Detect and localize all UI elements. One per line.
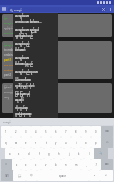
button[interactable]: f bbox=[34, 148, 44, 159]
staticText: z bbox=[16, 163, 18, 167]
staticText: ပေးသည် bbox=[4, 90, 14, 94]
staticText: e bbox=[25, 141, 27, 145]
staticText: f bbox=[39, 152, 40, 156]
button[interactable]: d bbox=[24, 148, 34, 159]
button[interactable]: .? bbox=[91, 159, 101, 170]
button[interactable]: • bbox=[89, 170, 100, 181]
button[interactable]: ↵ bbox=[100, 170, 113, 181]
button[interactable]: 0 bbox=[91, 126, 101, 137]
button[interactable]: မိမိဘဝ၏အစ bbox=[13, 77, 58, 91]
button[interactable]: 7 bbox=[61, 126, 71, 137]
button[interactable]: ပေးချင်သော bbox=[13, 55, 58, 69]
button[interactable]: ⌫ bbox=[101, 126, 113, 137]
button[interactable]: k bbox=[74, 148, 84, 159]
staticText: လှူဒါန်းမှုနှင့် ထိုက် bbox=[15, 84, 35, 90]
button[interactable]: Clear bbox=[101, 7, 106, 12]
button[interactable]: z bbox=[12, 159, 21, 170]
button[interactable]: , bbox=[81, 159, 91, 170]
button[interactable]: v bbox=[41, 159, 51, 170]
staticText: q bbox=[5, 141, 7, 145]
button[interactable]: More options bbox=[106, 5, 114, 13]
button[interactable]: ☺ bbox=[26, 170, 37, 181]
button[interactable]: ဖြစ်ရန် ပေးချင်သော စိတ်သည် bbox=[2, 41, 112, 79]
staticText: ⌫ bbox=[105, 130, 109, 133]
staticText: ပေးချင်သည်ဟူသော bbox=[15, 70, 38, 76]
button[interactable]: ပြစ် ပြုစားနှင့် bbox=[13, 91, 58, 105]
button[interactable]: m bbox=[71, 159, 81, 170]
button[interactable]: 4 bbox=[31, 126, 41, 137]
button[interactable]: o bbox=[81, 137, 91, 148]
staticText: ↵ bbox=[105, 174, 108, 177]
button[interactable]: ပေးချင်သည်ဟူသော bbox=[13, 69, 58, 77]
button[interactable]: 3 bbox=[21, 126, 31, 137]
button[interactable]: မြန် bbox=[13, 170, 26, 181]
staticText: k bbox=[78, 152, 80, 156]
button[interactable]: ပေးချင်သော ရည်ရွယ် bbox=[13, 27, 58, 41]
button[interactable]: n bbox=[61, 159, 71, 170]
button[interactable]: b bbox=[51, 159, 61, 170]
staticText: , bbox=[86, 163, 87, 167]
button[interactable]: g bbox=[44, 148, 54, 159]
button[interactable]: e bbox=[21, 137, 31, 148]
button[interactable]: 5 bbox=[41, 126, 51, 137]
staticText: ▭ bbox=[106, 141, 109, 144]
button[interactable]: c bbox=[31, 159, 41, 170]
button[interactable]: x bbox=[21, 159, 31, 170]
staticText: 6 bbox=[55, 130, 57, 134]
staticText: ပေးချင်သော ရည်ရွယ် bbox=[15, 28, 40, 34]
staticText: i bbox=[76, 141, 77, 145]
staticText: ကိုးကွယ်ရာ bbox=[15, 106, 28, 112]
button[interactable]: i bbox=[71, 137, 81, 148]
button[interactable]: 🔍 bbox=[94, 148, 108, 159]
button[interactable]: p bbox=[91, 137, 101, 148]
staticText: 8 bbox=[75, 130, 77, 134]
button[interactable]: w bbox=[11, 137, 21, 148]
staticText: n bbox=[65, 163, 67, 167]
button[interactable]: ဖြစ် bbox=[2, 14, 112, 37]
button[interactable]: a bbox=[5, 148, 14, 159]
button[interactable]: u bbox=[61, 137, 71, 148]
staticText: space bbox=[59, 174, 67, 178]
staticText: ⇧ bbox=[5, 163, 8, 166]
button[interactable]: q bbox=[1, 137, 11, 148]
button[interactable]: h bbox=[54, 148, 64, 159]
button[interactable]: 2 bbox=[11, 126, 21, 137]
button[interactable]: 1 bbox=[1, 126, 11, 137]
staticText: ⌦ bbox=[105, 163, 109, 166]
button[interactable]: !#1 bbox=[1, 170, 13, 181]
staticText: ordain. bbox=[4, 53, 14, 57]
button[interactable]: r bbox=[31, 137, 41, 148]
button[interactable]: ပေးချင် bbox=[8, 7, 106, 12]
button[interactable]: ပေးချင်သော bbox=[13, 13, 58, 27]
staticText: r bbox=[35, 141, 37, 145]
staticText: t bbox=[46, 141, 47, 145]
button[interactable]: ဖြစ်ပေါ် bbox=[2, 83, 112, 113]
button[interactable]: Menu bbox=[0, 5, 8, 13]
button[interactable]: 9 bbox=[81, 126, 91, 137]
button[interactable]: ⇧ bbox=[1, 159, 12, 170]
staticText: ရည်ရွယ်ချက် bbox=[4, 26, 18, 30]
staticText: ပေးခဲ့သော ရာထူးအရာ bbox=[4, 68, 27, 72]
staticText: c bbox=[35, 163, 37, 167]
staticText: • bbox=[94, 174, 95, 178]
button[interactable]: space bbox=[37, 170, 89, 181]
staticText: စိတ်ထားရှိရမည် bbox=[15, 62, 33, 68]
button[interactable]: j bbox=[64, 148, 74, 159]
staticText: ဖြစ်ရန် ပေးချင်သော စိတ်သည် bbox=[4, 43, 35, 47]
staticText: 2 bbox=[15, 130, 17, 134]
button[interactable]: ▭ bbox=[101, 137, 113, 148]
staticText: ပေးချင် bbox=[3, 120, 11, 124]
button[interactable]: t bbox=[41, 137, 51, 148]
button[interactable]: ပေးချင်သည့် bbox=[13, 41, 58, 55]
button[interactable]: s bbox=[14, 148, 24, 159]
button[interactable]: ကိုးကွယ်ရာ bbox=[13, 105, 58, 118]
button[interactable]: l bbox=[84, 148, 94, 159]
button[interactable]: 8 bbox=[71, 126, 81, 137]
button[interactable]: 6 bbox=[51, 126, 61, 137]
button[interactable]: ပေးချင် bbox=[3, 120, 11, 124]
staticText: 1 bbox=[5, 130, 7, 134]
staticText: s bbox=[18, 152, 20, 156]
button[interactable]: ⌦ bbox=[101, 159, 113, 170]
staticText: ကောင်းသော စိတ်ထား... bbox=[15, 20, 42, 26]
button[interactable]: y bbox=[51, 137, 61, 148]
